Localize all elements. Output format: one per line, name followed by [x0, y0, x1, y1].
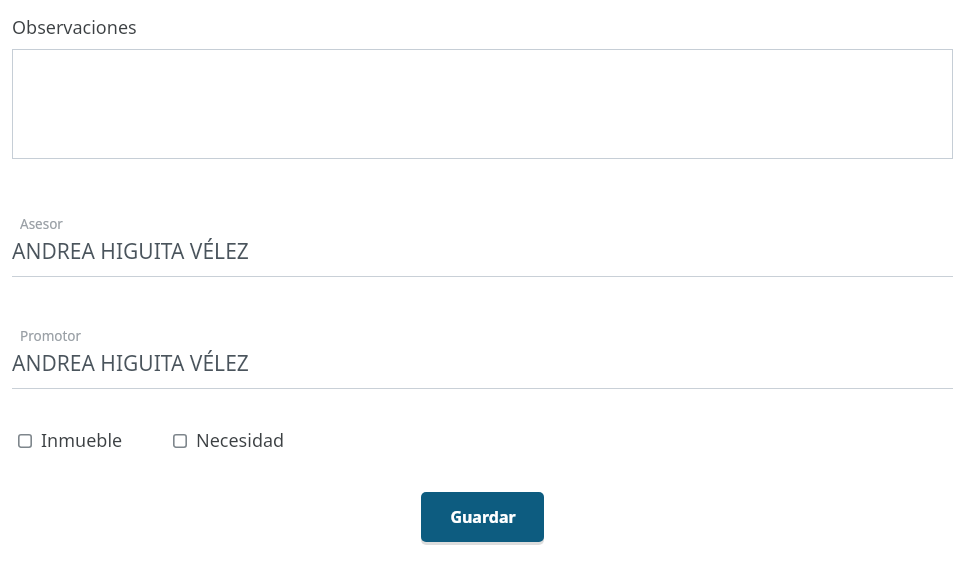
staticText: ANDREA HIGUITA VÉLEZ — [12, 349, 249, 378]
button[interactable]: Guardar — [421, 492, 544, 542]
staticText: ANDREA HIGUITA VÉLEZ — [12, 237, 249, 266]
staticText: Inmueble — [41, 428, 123, 453]
staticText: Necesidad — [196, 428, 285, 453]
staticText: Asesor — [20, 215, 63, 233]
staticText: Promotor — [20, 327, 82, 345]
button[interactable]: Inmueble — [18, 426, 123, 455]
button[interactable] — [12, 49, 953, 159]
button[interactable]: Necesidad — [173, 426, 285, 455]
staticText: Guardar — [450, 506, 516, 528]
staticText: Observaciones — [12, 15, 137, 40]
